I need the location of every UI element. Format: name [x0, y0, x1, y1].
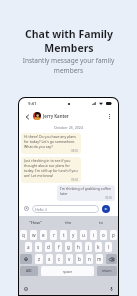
staticText: 09:05 — [60, 196, 112, 200]
staticText: Just checking in to see if you thought a… — [24, 158, 78, 178]
button[interactable]: c — [56, 254, 63, 264]
staticText: Jerry Kanter — [43, 113, 69, 119]
button[interactable]: n — [86, 254, 93, 264]
button[interactable]: b — [76, 254, 83, 264]
button[interactable]: return — [97, 266, 117, 276]
button[interactable]: p — [110, 230, 117, 240]
staticText: 09:02 — [24, 178, 78, 182]
staticText: e — [42, 232, 45, 238]
staticText: u — [82, 232, 85, 238]
staticText: return — [102, 269, 112, 273]
staticText: l — [108, 244, 110, 250]
staticText: 08:55 — [24, 149, 78, 153]
staticText: i — [93, 232, 95, 238]
button[interactable]: r — [50, 230, 57, 240]
staticText: k — [97, 244, 100, 250]
button[interactable]: u — [80, 230, 87, 240]
staticText: s — [37, 244, 40, 250]
button[interactable]: Shift — [20, 254, 32, 264]
button[interactable]: Hello :) — [32, 205, 99, 213]
button[interactable]: Send — [102, 205, 110, 213]
button[interactable]: Back — [24, 113, 31, 120]
staticText: I'm thinking of grabbing coffee later — [60, 186, 112, 196]
staticText: x — [48, 256, 51, 262]
button[interactable]: f — [55, 242, 62, 252]
staticText: m — [97, 256, 102, 262]
button[interactable]: k — [95, 242, 102, 252]
button[interactable]: v — [66, 254, 73, 264]
staticText: 9:41 — [28, 101, 37, 107]
staticText: c — [58, 256, 61, 262]
button[interactable]: x — [46, 254, 53, 264]
staticText: n — [88, 256, 91, 262]
staticText: f — [58, 244, 60, 250]
button[interactable]: space — [41, 266, 94, 276]
staticText: space — [63, 269, 73, 274]
button[interactable]: t — [60, 230, 67, 240]
button[interactable]: q — [20, 230, 27, 240]
staticText: ABC — [26, 269, 33, 273]
staticText: Hello :) — [35, 207, 47, 212]
button[interactable]: h — [75, 242, 82, 252]
staticText: Chat with Family Members — [23, 27, 115, 55]
staticText: t — [63, 232, 65, 238]
staticText: Instantly message your family members — [21, 56, 116, 75]
button[interactable]: to — [85, 217, 118, 228]
staticText: o — [102, 232, 105, 238]
staticText: h — [77, 244, 80, 250]
staticText: to — [99, 220, 104, 226]
button[interactable]: I'm thinking of grabbing coffee later — [57, 185, 115, 201]
button[interactable]: e — [40, 230, 47, 240]
staticText: b — [78, 256, 81, 262]
staticText: p — [112, 232, 115, 238]
button[interactable]: y — [70, 230, 77, 240]
staticText: a — [27, 244, 30, 250]
staticText: Hi there! Do you have any plans for toda… — [24, 134, 78, 149]
staticText: y — [72, 232, 75, 238]
button[interactable]: g — [65, 242, 72, 252]
button[interactable]: Just checking in to see if you thought a… — [21, 157, 81, 183]
button[interactable]: i — [90, 230, 97, 240]
button[interactable]: z — [35, 254, 43, 264]
staticText: q — [22, 232, 25, 238]
staticText: the — [65, 220, 72, 226]
button[interactable]: w — [30, 230, 37, 240]
button[interactable]: Backspace — [106, 254, 117, 264]
button[interactable]: d — [45, 242, 52, 252]
staticText: j — [88, 244, 90, 250]
button[interactable]: Voice input — [108, 286, 114, 292]
button[interactable]: Add attachment — [23, 205, 30, 212]
button[interactable]: Hi there! Do you have any plans for toda… — [21, 133, 81, 154]
staticText: z — [38, 256, 41, 262]
staticText: v — [68, 256, 71, 262]
button[interactable]: More options — [106, 113, 113, 120]
button[interactable]: j — [85, 242, 92, 252]
button[interactable]: the — [52, 217, 85, 228]
button[interactable]: o — [100, 230, 107, 240]
staticText: w — [32, 232, 36, 238]
button[interactable]: l — [105, 242, 112, 252]
staticText: d — [47, 244, 50, 250]
button[interactable]: m — [96, 254, 103, 264]
button[interactable]: "How" — [19, 217, 52, 228]
button[interactable]: ABC — [20, 266, 38, 276]
button[interactable]: s — [35, 242, 42, 252]
staticText: "How" — [29, 220, 42, 226]
staticText: October 26, 2024 — [19, 125, 118, 130]
staticText: r — [53, 232, 55, 238]
button[interactable]: a — [25, 242, 32, 252]
staticText: g — [67, 244, 70, 250]
button[interactable]: Emoji — [23, 286, 29, 292]
